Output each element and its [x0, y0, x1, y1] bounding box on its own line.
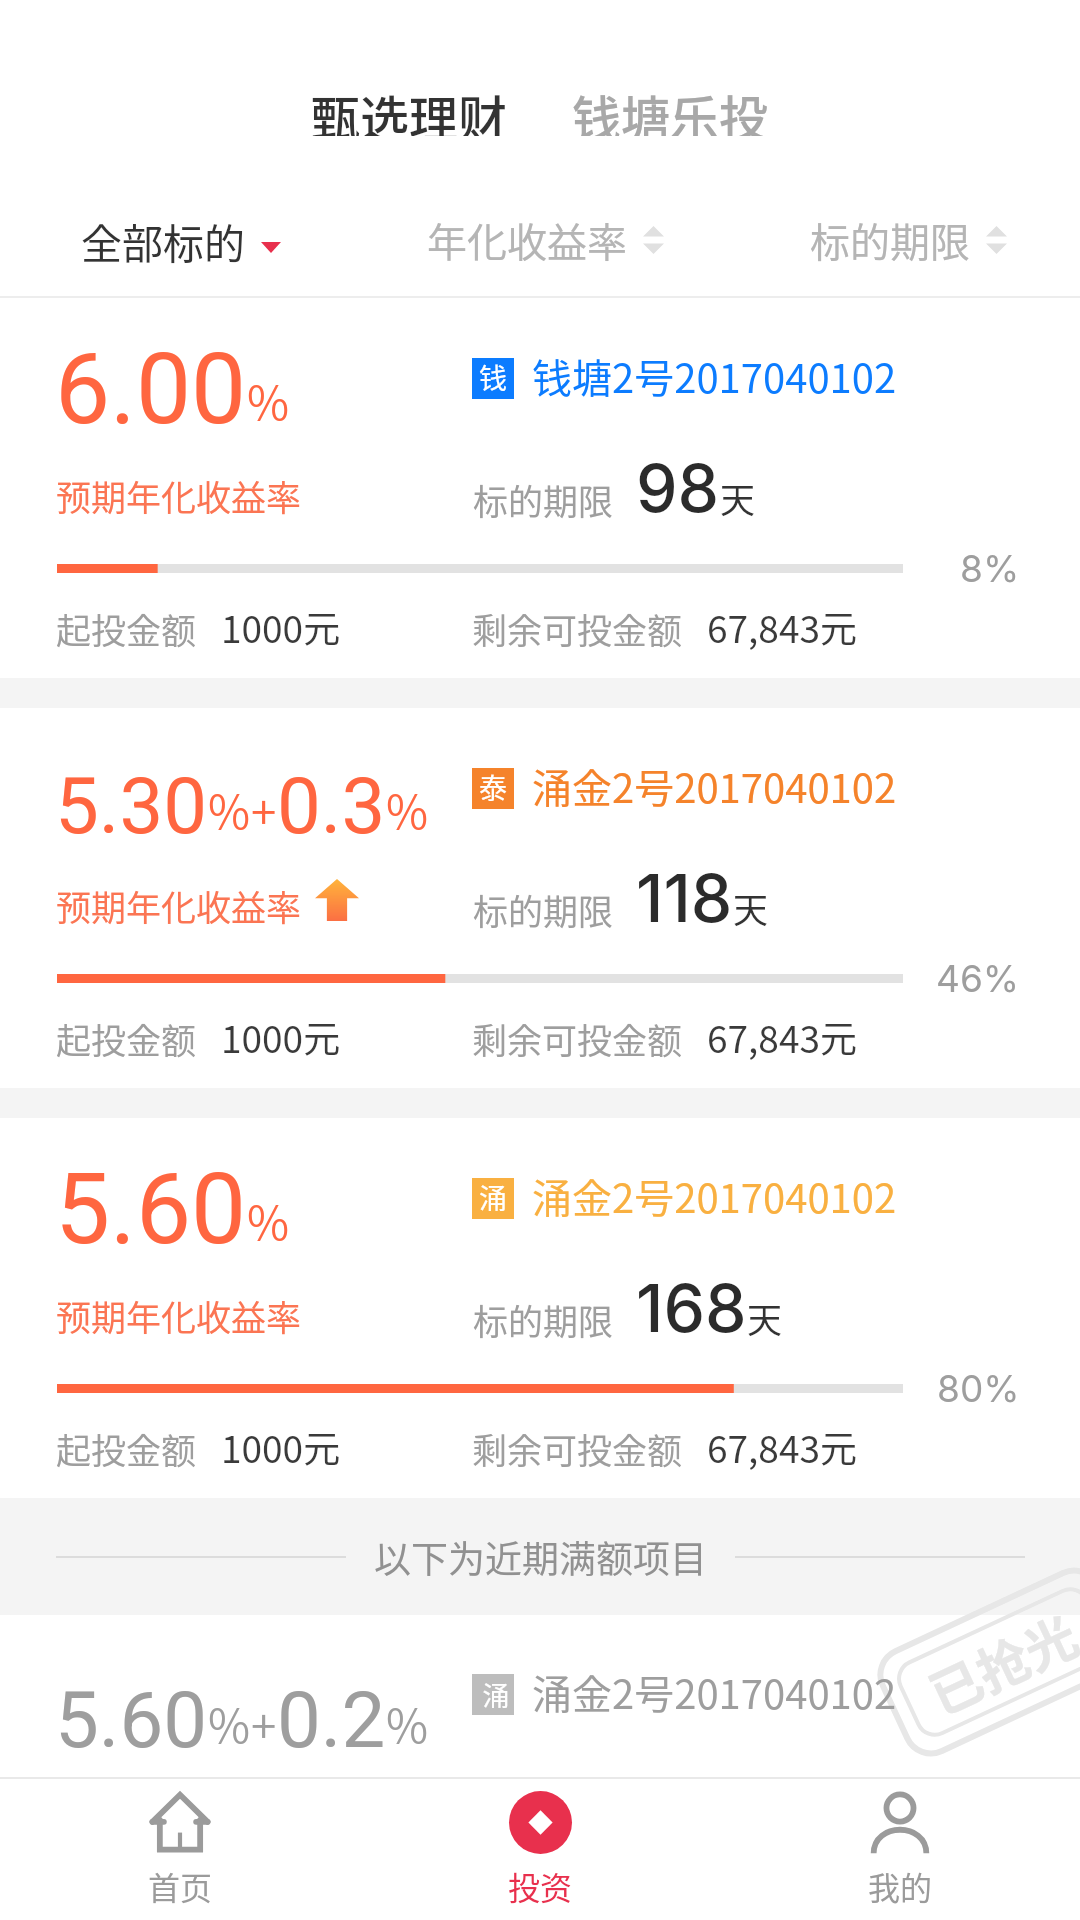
- button[interactable]: 6.00: [0, 298, 1080, 678]
- staticText: 5.30: [55, 761, 208, 852]
- button[interactable]: 标的期限: [768, 200, 1048, 280]
- staticText: 1000元: [221, 600, 341, 654]
- staticText: 以下为近期满额项目: [374, 1530, 707, 1584]
- staticText: 天: [720, 472, 756, 523]
- staticText: 起投金额: [56, 1423, 197, 1474]
- button[interactable]: 5.30: [0, 708, 1080, 1088]
- staticText: 天: [733, 882, 769, 933]
- staticText: 118: [636, 858, 733, 938]
- staticText: +: [251, 1690, 277, 1757]
- staticText: 起投金额: [56, 1013, 197, 1064]
- staticText: 涌: [479, 1177, 508, 1218]
- staticText: 5.60: [55, 1675, 208, 1766]
- staticText: 涌金2号2017040102: [532, 1167, 897, 1225]
- staticText: 甄选理财: [311, 80, 508, 136]
- staticText: 首页: [148, 1863, 213, 1909]
- button[interactable]: 投资: [360, 1779, 720, 1920]
- staticText: 5.60: [55, 1152, 247, 1267]
- staticText: 剩余可投金额: [472, 603, 683, 654]
- staticText: 钱塘乐投: [572, 80, 769, 136]
- button[interactable]: 全部标的: [60, 200, 360, 280]
- staticText: 涌: [477, 1675, 510, 1714]
- button[interactable]: 甄选理财: [311, 80, 508, 136]
- staticText: 预期年化收益率: [56, 1290, 302, 1341]
- staticText: %: [208, 776, 251, 843]
- other: 首页: [149, 1791, 211, 1854]
- staticText: 投资: [508, 1863, 573, 1909]
- staticText: 6.00: [55, 332, 247, 447]
- other: 投资: [509, 1791, 572, 1854]
- button[interactable]: 我的: [720, 1779, 1080, 1920]
- staticText: 0.3: [277, 761, 386, 852]
- staticText: 168: [636, 1268, 747, 1348]
- staticText: 1000元: [221, 1420, 341, 1474]
- staticText: 已抢光: [916, 1595, 1080, 1730]
- staticText: 涌金2号2017040102: [532, 757, 897, 815]
- staticText: 起投金额: [56, 603, 197, 654]
- staticText: 标的期限: [810, 211, 970, 269]
- staticText: 预期年化收益率: [56, 470, 302, 521]
- staticText: 涌金2号2017040102: [532, 1663, 897, 1721]
- other: 我的: [869, 1791, 931, 1854]
- staticText: 1000元: [221, 1010, 341, 1064]
- staticText: 46%: [936, 956, 1020, 1001]
- staticText: 我的: [868, 1863, 933, 1909]
- button[interactable]: 5.60: [0, 1118, 1080, 1498]
- staticText: 67,843元: [707, 1420, 857, 1474]
- staticText: %: [386, 1690, 429, 1757]
- staticText: 钱: [479, 357, 508, 398]
- staticText: 67,843元: [707, 600, 857, 654]
- staticText: %: [208, 1690, 251, 1757]
- staticText: 标的期限: [473, 1294, 614, 1345]
- staticText: 剩余可投金额: [472, 1423, 683, 1474]
- staticText: %: [247, 367, 290, 434]
- button[interactable]: 钱塘乐投: [572, 80, 769, 136]
- staticText: 80%: [937, 1366, 1020, 1411]
- staticText: 标的期限: [473, 474, 614, 525]
- staticText: 8%: [960, 546, 1020, 591]
- staticText: +: [251, 776, 277, 843]
- staticText: 预期年化收益率: [56, 880, 302, 931]
- button[interactable]: 年化收益率: [405, 200, 685, 280]
- staticText: 67,843元: [707, 1010, 857, 1064]
- staticText: 剩余可投金额: [472, 1013, 683, 1064]
- staticText: 天: [747, 1292, 783, 1343]
- staticText: %: [247, 1187, 290, 1254]
- staticText: 钱塘2号2017040102: [532, 347, 897, 405]
- button[interactable]: 已抢光: [0, 1615, 1080, 1775]
- staticText: 全部标的: [81, 211, 245, 270]
- button[interactable]: 首页: [0, 1779, 360, 1920]
- staticText: 98: [636, 448, 720, 528]
- staticText: 标的期限: [473, 884, 614, 935]
- staticText: 泰: [479, 767, 508, 808]
- staticText: 0.2: [277, 1675, 386, 1766]
- staticText: 年化收益率: [427, 211, 627, 269]
- staticText: %: [386, 776, 429, 843]
